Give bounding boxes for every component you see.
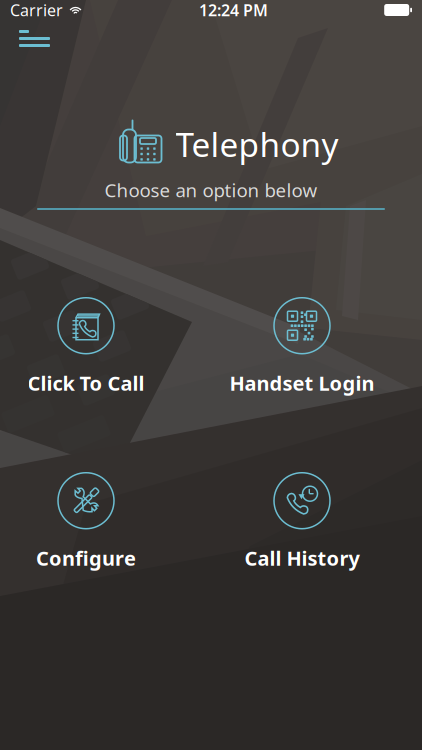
button[interactable]: Handset Login	[212, 297, 392, 397]
staticText: Configure	[36, 545, 136, 571]
button[interactable]: Call History	[212, 472, 392, 572]
staticText: Carrier	[10, 0, 63, 21]
staticText: Click To Call	[27, 370, 144, 396]
button[interactable]: Click To Call	[0, 297, 176, 397]
button[interactable]: Configure	[0, 472, 176, 572]
staticText: Handset Login	[229, 370, 374, 396]
staticText: Call History	[244, 545, 359, 571]
staticText: Telephony	[175, 122, 338, 166]
button[interactable]: Menu	[9, 20, 60, 57]
staticText: Choose an option below	[104, 178, 317, 202]
staticText: 12:24 PM	[199, 0, 268, 21]
